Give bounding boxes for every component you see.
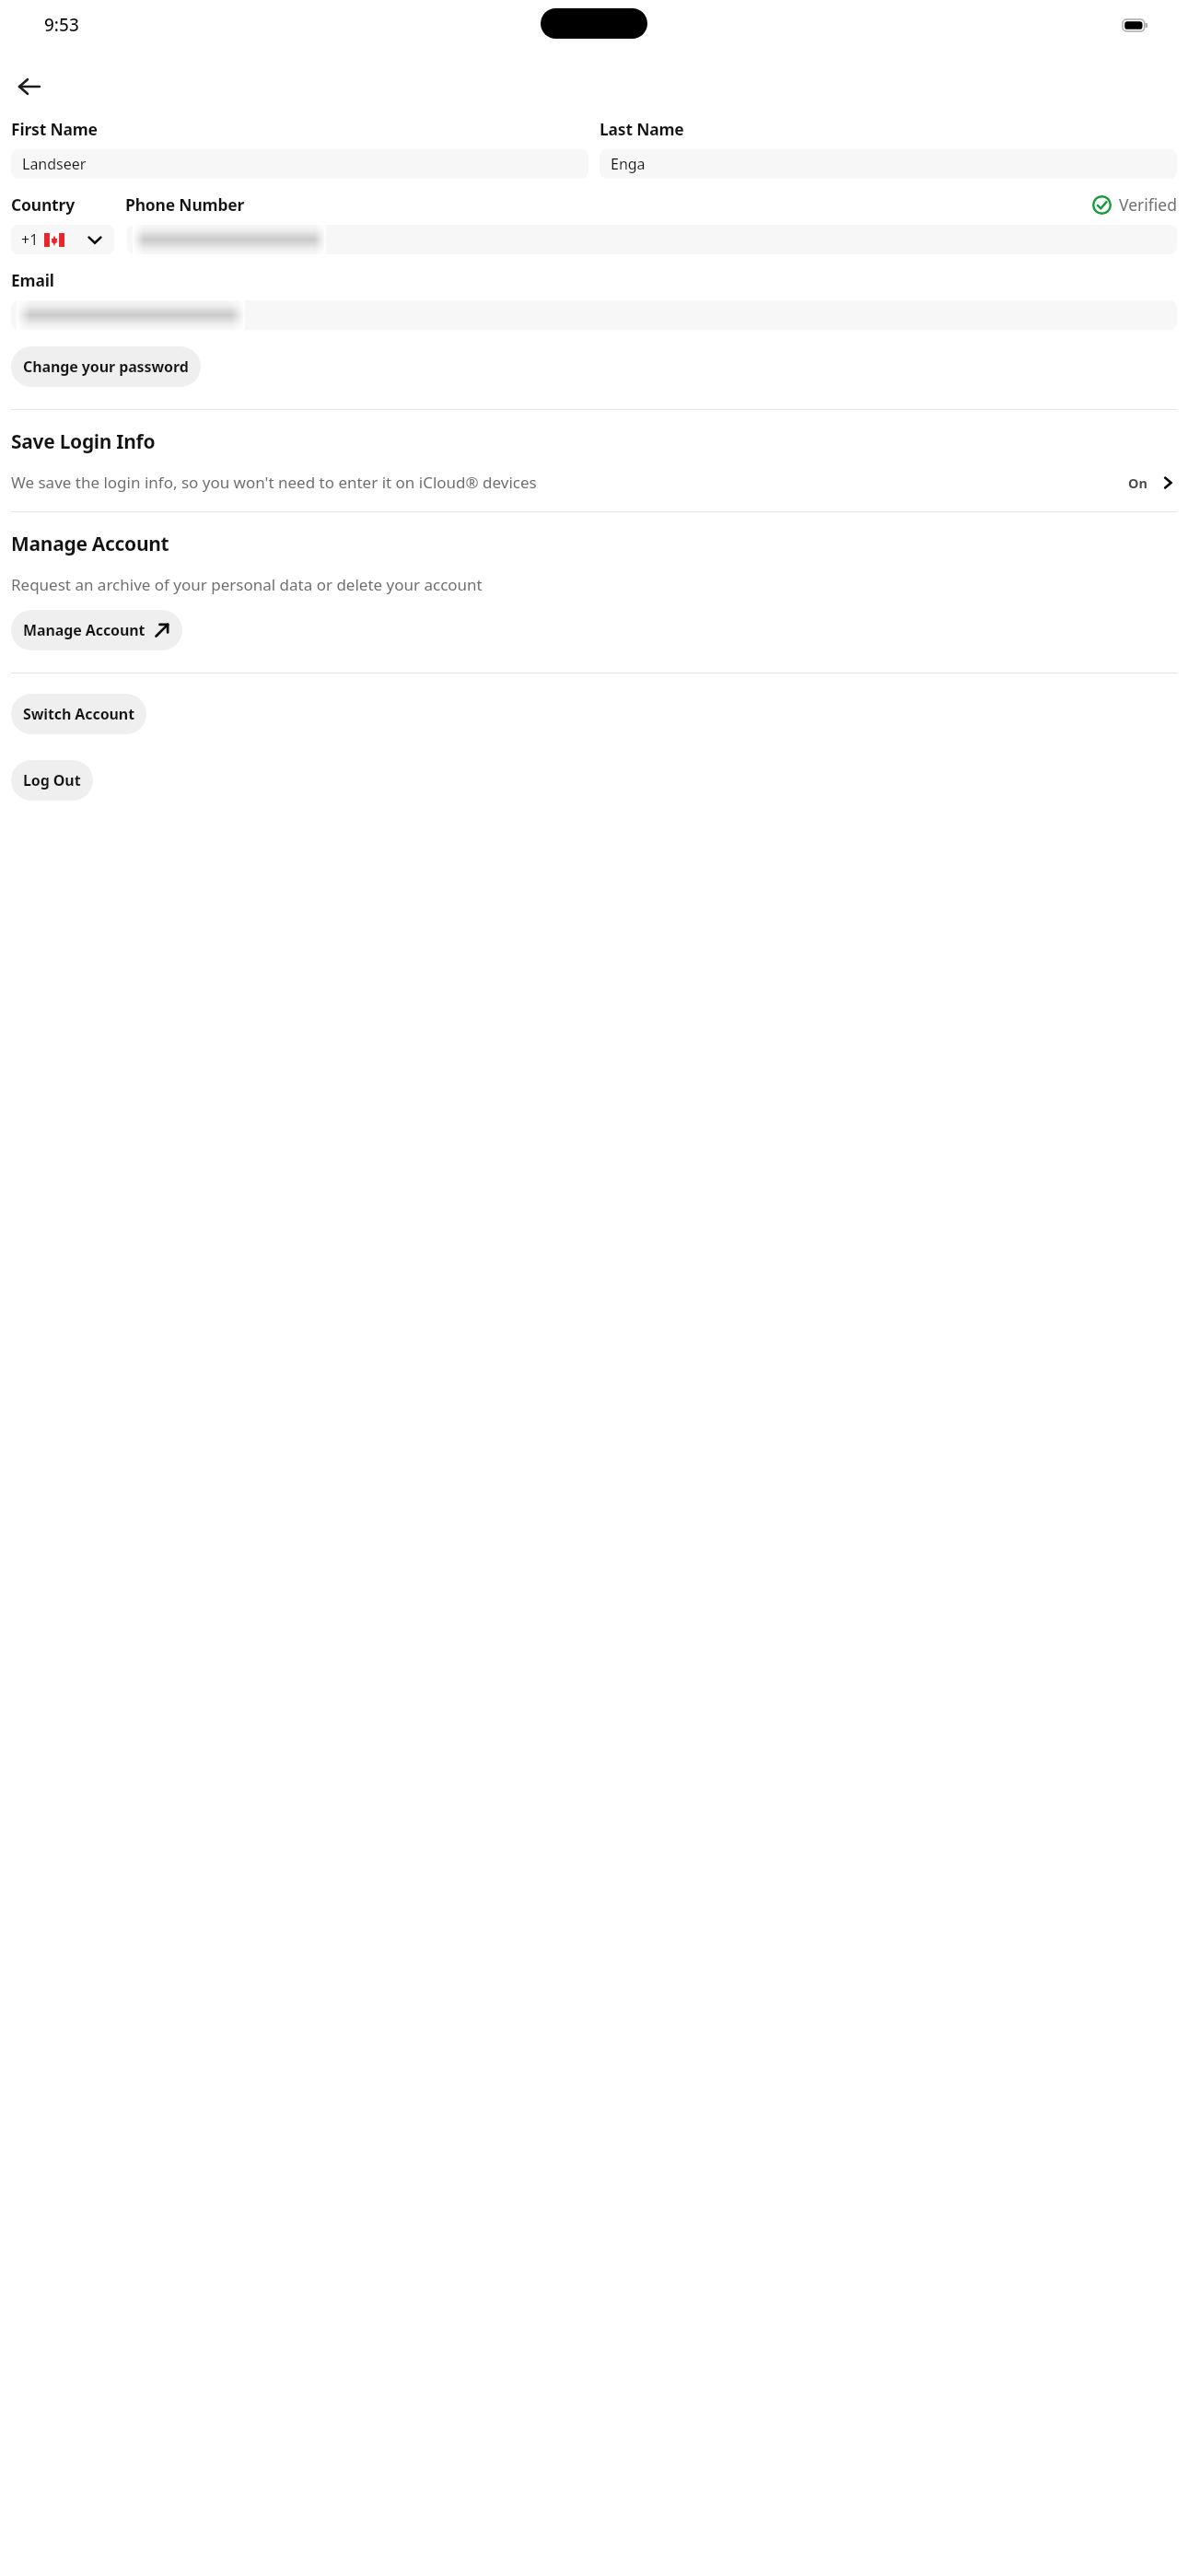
button[interactable]: +1 (11, 225, 114, 254)
button[interactable]: Landseer (11, 149, 588, 179)
other: Select country (86, 230, 104, 249)
staticText: Phone Number (125, 193, 1092, 216)
staticText: Landseer (22, 154, 87, 174)
staticText: Enga (611, 154, 646, 174)
button[interactable]: Manage Account (11, 610, 182, 650)
button[interactable] (127, 225, 1177, 254)
staticText: Switch Account (23, 704, 134, 724)
staticText: +1 (21, 229, 39, 250)
button[interactable] (11, 300, 1177, 330)
staticText: Change your password (23, 357, 189, 377)
staticText: Manage Account (23, 620, 146, 640)
staticText: Email (11, 269, 54, 291)
staticText: First Name (11, 118, 98, 140)
staticText: Last Name (600, 118, 684, 140)
button[interactable]: Switch Account (11, 694, 146, 734)
staticText: Verified (1119, 193, 1177, 216)
button[interactable]: Enga (600, 149, 1177, 179)
staticText: Request an archive of your personal data… (11, 574, 1155, 595)
button[interactable]: Back (7, 64, 52, 109)
staticText: Save Login Info (11, 428, 156, 455)
staticText: Country (11, 193, 125, 216)
staticText: Manage Account (11, 531, 169, 557)
button[interactable]: We save the login info, so you won't nee… (11, 472, 1177, 493)
staticText: 9:53 (44, 13, 79, 37)
staticText: We save the login info, so you won't nee… (11, 472, 1113, 493)
staticText: Log Out (23, 770, 81, 790)
button[interactable]: Change your password (11, 346, 201, 387)
staticText: On (1128, 474, 1147, 492)
button[interactable]: Log Out (11, 760, 93, 801)
